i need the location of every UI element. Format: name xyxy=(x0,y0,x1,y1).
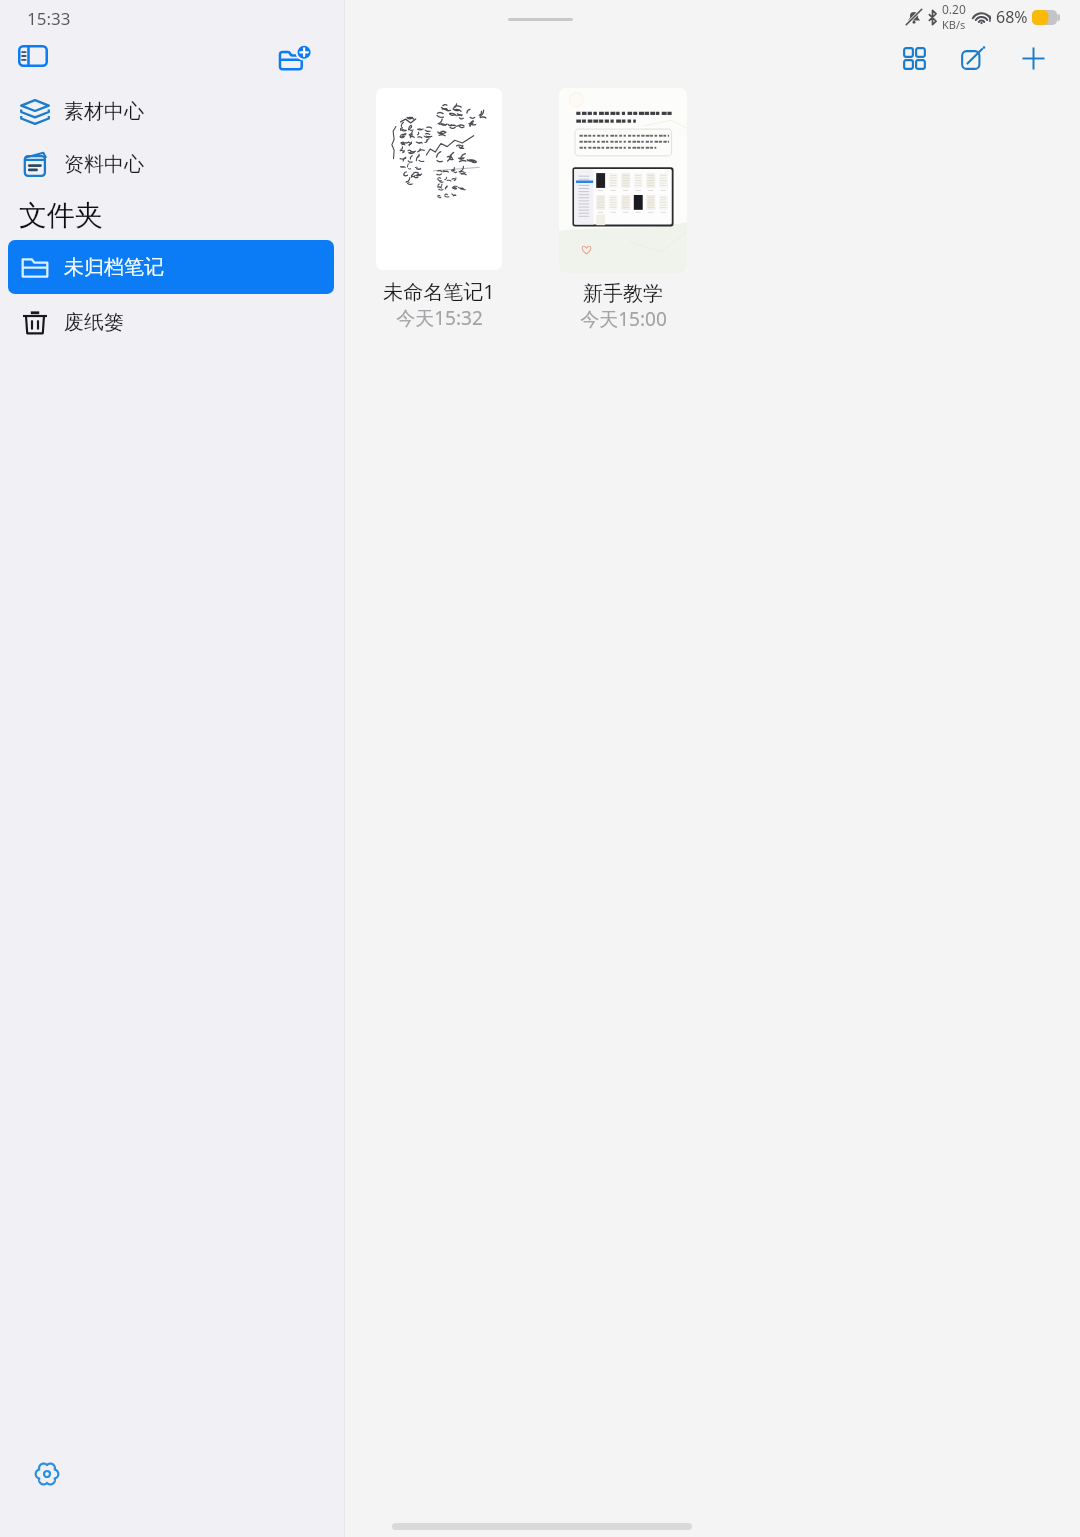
staticText: 68% xyxy=(996,6,1028,28)
button[interactable]: Toggle sidebar xyxy=(10,33,55,78)
staticText: 今天15:00 xyxy=(580,306,667,332)
staticText: 废纸篓 xyxy=(64,310,124,335)
button[interactable]: 废纸篓 xyxy=(8,297,334,347)
staticText: 资料中心 xyxy=(64,152,144,177)
staticText: 未归档笔记 xyxy=(64,255,164,280)
staticText: 新手教学 xyxy=(583,281,663,306)
button[interactable]: 未命名笔记1 xyxy=(376,88,502,331)
button[interactable]: 新手教学 xyxy=(559,88,687,332)
button[interactable]: Edit note xyxy=(950,36,994,80)
button[interactable]: 资料中心 xyxy=(8,139,334,189)
button[interactable]: New folder xyxy=(272,36,317,81)
staticText: 素材中心 xyxy=(64,99,144,124)
staticText: 0.20 xyxy=(942,1,966,17)
button[interactable]: Grid view xyxy=(892,36,936,80)
staticText: 15:33 xyxy=(27,7,71,30)
button[interactable]: 未归档笔记 xyxy=(8,240,334,294)
staticText: 文件夹 xyxy=(19,198,103,233)
staticText: 未命名笔记1 xyxy=(383,278,495,305)
staticText: KB/s xyxy=(942,17,966,31)
button[interactable]: 素材中心 xyxy=(8,86,334,136)
button[interactable]: Add note xyxy=(1011,36,1055,80)
staticText: 今天15:32 xyxy=(396,305,483,331)
button[interactable]: Settings xyxy=(24,1451,69,1496)
